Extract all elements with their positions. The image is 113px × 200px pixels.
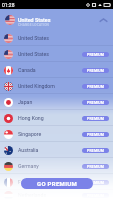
staticText: Japan [18,99,33,105]
staticText: Australia [18,147,39,153]
staticText: 01:28 [2,2,15,8]
staticText: CHANGE LOCATION [18,23,49,27]
staticText: United States [18,51,49,57]
staticText: PREMIUM [87,117,105,121]
button[interactable]: United States [0,46,113,62]
button[interactable]: Australia [0,142,113,158]
staticText: GO PREMIUM [37,180,78,187]
staticText: PREMIUM [87,133,105,137]
staticText: Canada [18,67,36,73]
staticText: Hong Kong [18,115,44,121]
button[interactable]: Germany [0,158,113,174]
button[interactable]: Hong Kong [0,110,113,126]
staticText: Singapore [18,131,42,137]
button[interactable]: United Kingdom [0,78,113,94]
button[interactable]: Collapse [96,13,110,27]
staticText: PREMIUM [87,85,105,89]
staticText: PREMIUM [87,101,105,105]
staticText: PREMIUM [87,53,105,57]
staticText: PREMIUM [87,181,105,185]
staticText: United States [18,17,51,23]
button[interactable]: United States [0,9,113,30]
staticText: United States [18,35,49,41]
button[interactable]: France [0,174,113,190]
staticText: France [18,179,34,185]
button[interactable]: Japan [0,94,113,110]
button[interactable]: Canada [0,62,113,78]
staticText: PREMIUM [87,165,105,169]
button[interactable]: GO PREMIUM [21,178,93,189]
staticText: PREMIUM [87,69,105,73]
staticText: United Kingdom [18,83,55,89]
staticText: Germany [18,163,39,169]
staticText: PREMIUM [87,149,105,153]
button[interactable]: Singapore [0,126,113,142]
button[interactable]: United States [0,30,113,46]
